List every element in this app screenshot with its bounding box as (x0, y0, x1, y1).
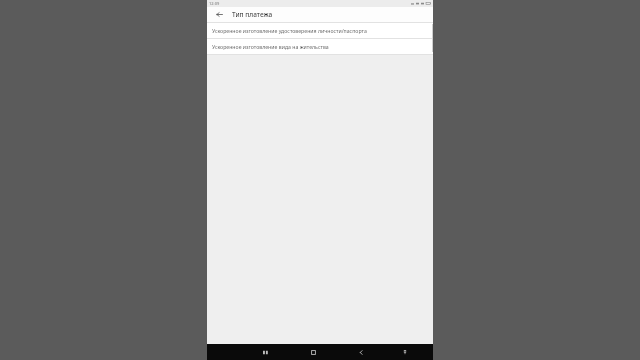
button[interactable]: Back (353, 344, 369, 360)
staticText: 12:09 (209, 1, 220, 6)
staticText: Ускоренное изготовление вида на жительст… (212, 43, 329, 50)
button[interactable]: Ускоренное изготовление удостоверения ли… (207, 23, 433, 38)
button[interactable]: Recent apps (257, 344, 273, 360)
button[interactable]: Ускоренное изготовление вида на жительст… (207, 39, 433, 54)
button[interactable]: Home (305, 344, 321, 360)
button[interactable]: Back (214, 9, 225, 20)
staticText: Тип платежа (232, 10, 273, 19)
staticText: Ускоренное изготовление удостоверения ли… (212, 27, 367, 34)
button[interactable]: Screenshot (397, 344, 413, 360)
